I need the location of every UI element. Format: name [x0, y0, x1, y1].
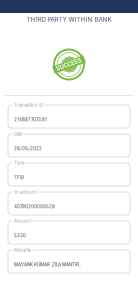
staticText: 28/05/2022	[14, 146, 42, 151]
staticText: Remarks	[14, 247, 31, 253]
staticText: 2148877073:81	[14, 117, 47, 122]
button[interactable]: 2148877073:81	[8, 105, 130, 128]
staticText: 17:19	[14, 175, 24, 180]
staticText: Date	[14, 131, 22, 137]
staticText: SUCCESS	[55, 61, 82, 68]
staticText: 40790200000528	[14, 204, 55, 209]
staticText: THIRD PARTY WITHIN BANK	[26, 16, 111, 23]
button[interactable]: 17:19	[8, 163, 130, 186]
staticText: Amount	[14, 218, 31, 224]
button[interactable]: MAYANK KUMAR ,ZILA MANTRI..	[8, 250, 130, 273]
button[interactable]: 40790200000528	[8, 192, 130, 215]
button[interactable]: 28/05/2022	[8, 134, 130, 157]
staticText: 5330	[14, 233, 26, 238]
staticText: Time	[14, 160, 24, 166]
button[interactable]: 5330	[8, 221, 130, 244]
staticText: To account	[14, 189, 36, 195]
staticText: Transaction ID	[14, 102, 43, 108]
staticText: MAYANK KUMAR ,ZILA MANTRI..	[14, 262, 81, 267]
